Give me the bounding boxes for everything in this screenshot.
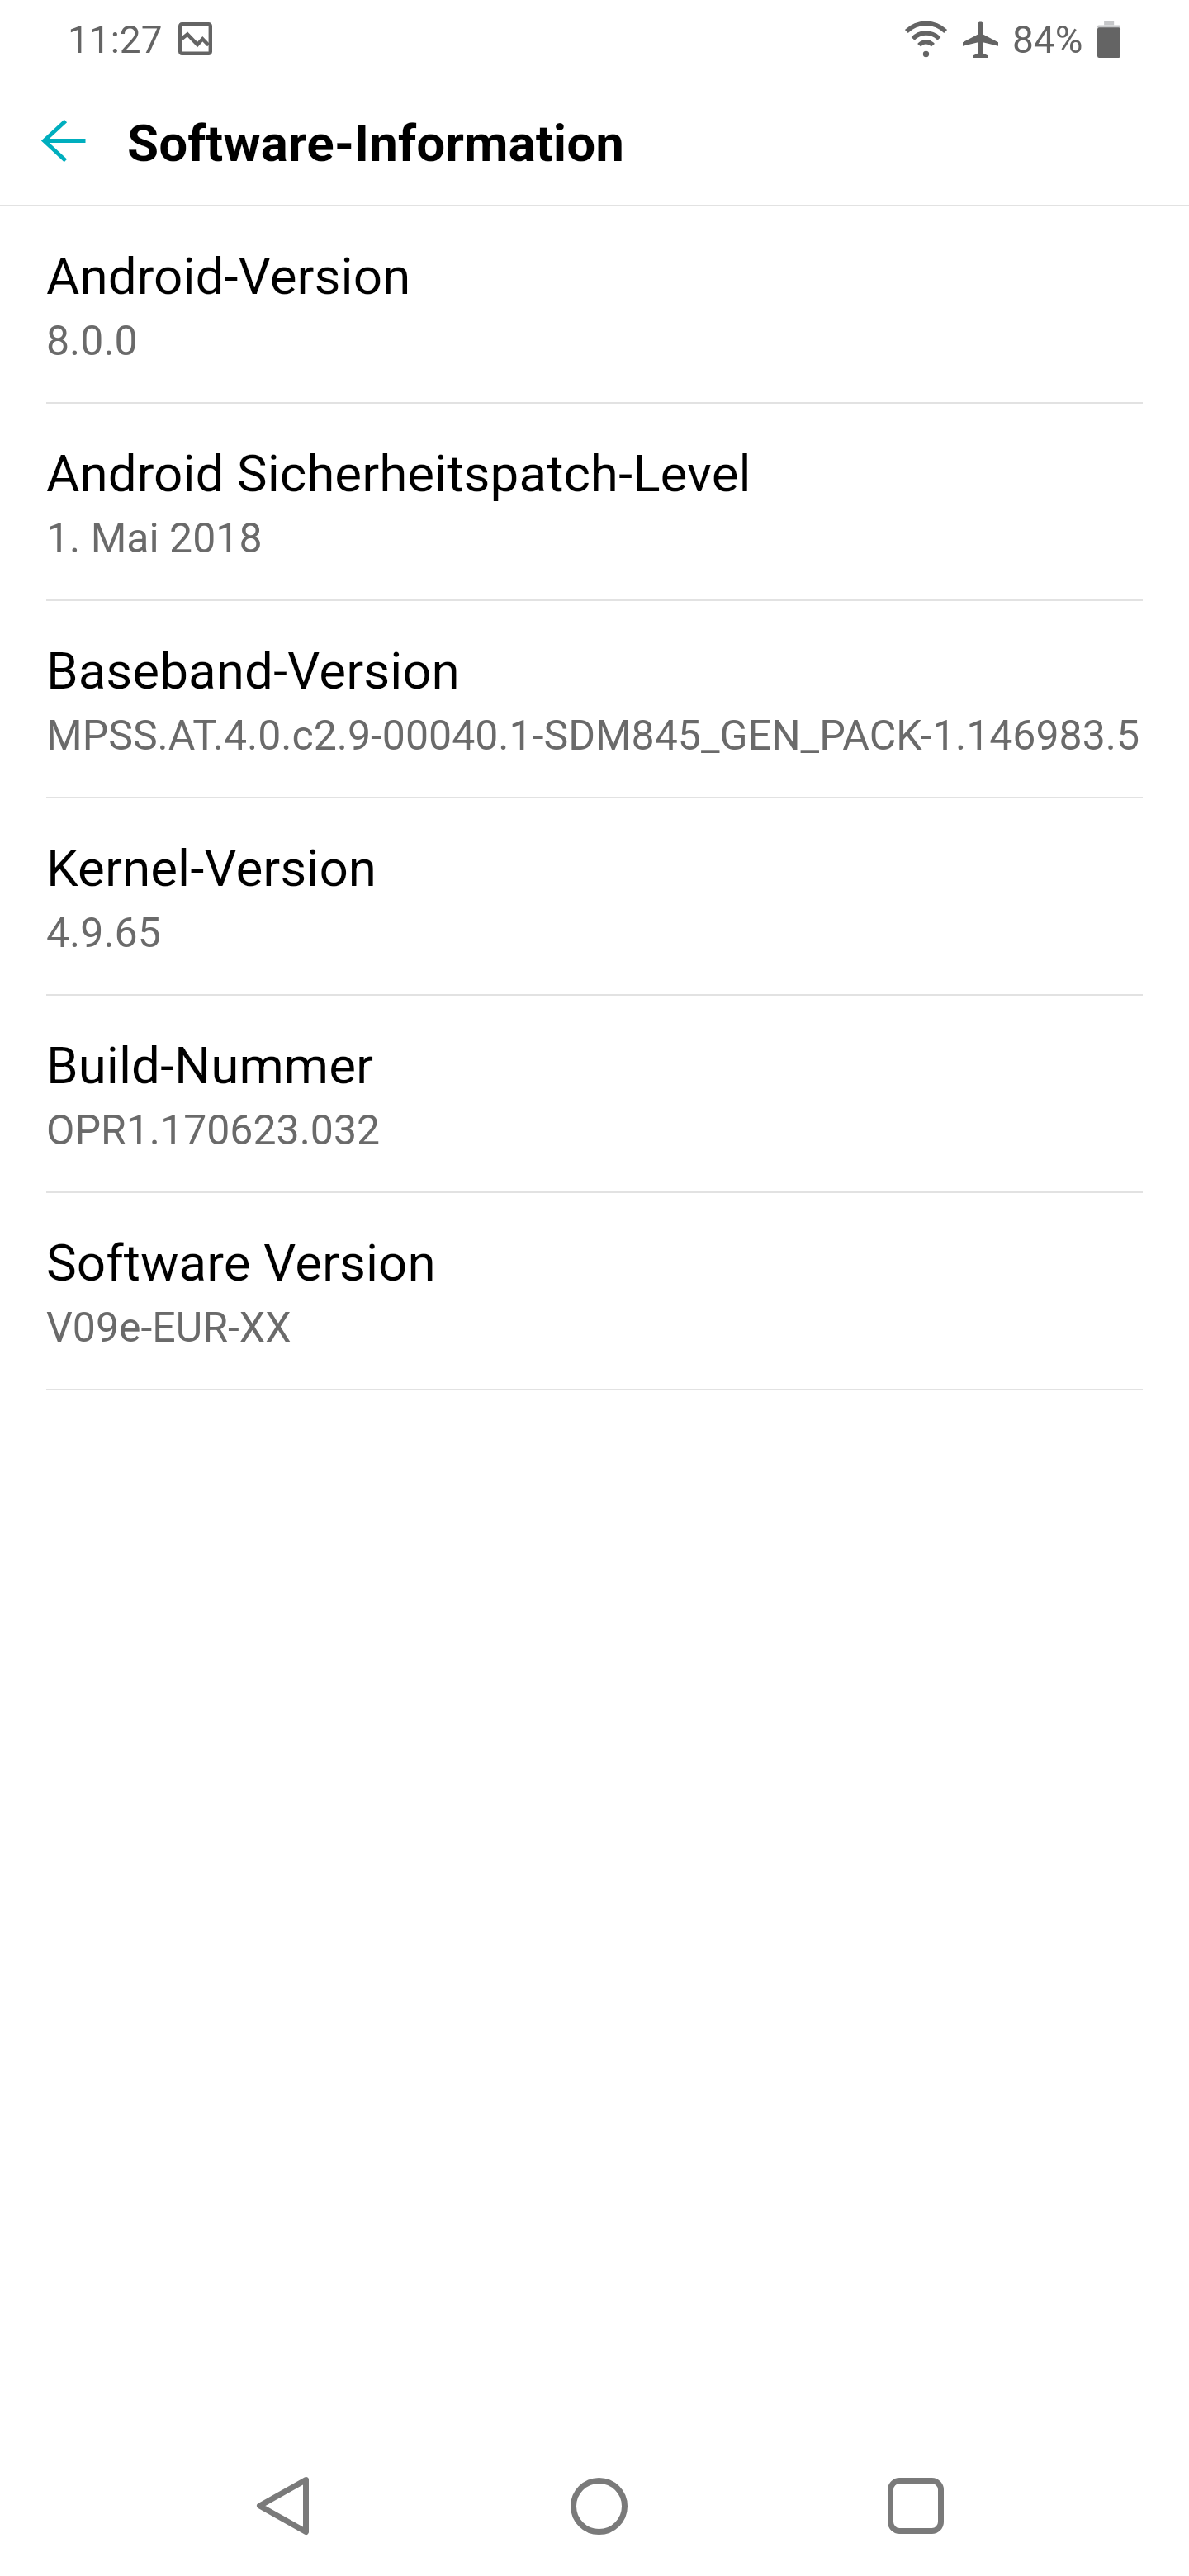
- staticText: Software-Information: [127, 113, 624, 173]
- staticText: Kernel-Version: [46, 838, 377, 898]
- button[interactable]: Back: [24, 101, 103, 180]
- staticText: MPSS.AT.4.0.c2.9-00040.1-SDM845_GEN_PACK…: [46, 712, 1140, 760]
- staticText: V09e-EUR-XX: [46, 1304, 291, 1352]
- button[interactable]: Software Version: [0, 1193, 1189, 1390]
- staticText: 8.0.0: [46, 317, 138, 366]
- staticText: Android-Version: [46, 246, 411, 306]
- staticText: 1. Mai 2018: [46, 514, 263, 563]
- staticText: 4.9.65: [46, 909, 161, 958]
- staticText: Build-Nummer: [46, 1035, 374, 1096]
- button[interactable]: Build-Nummer: [0, 996, 1189, 1193]
- staticText: 11:27: [68, 17, 163, 62]
- button[interactable]: Home: [553, 2460, 644, 2551]
- staticText: Software Version: [46, 1233, 436, 1293]
- staticText: Android Sicherheitspatch-Level: [46, 443, 751, 504]
- button[interactable]: Back: [237, 2460, 328, 2551]
- button[interactable]: Android Sicherheitspatch-Level: [0, 404, 1189, 601]
- button[interactable]: Android-Version: [0, 206, 1189, 404]
- button[interactable]: Recent apps: [870, 2460, 961, 2551]
- staticText: Baseband-Version: [46, 641, 460, 701]
- staticText: OPR1.170623.032: [46, 1106, 381, 1155]
- button[interactable]: Kernel-Version: [0, 798, 1189, 996]
- button[interactable]: Baseband-Version: [0, 601, 1189, 798]
- staticText: 84%: [1012, 17, 1083, 62]
